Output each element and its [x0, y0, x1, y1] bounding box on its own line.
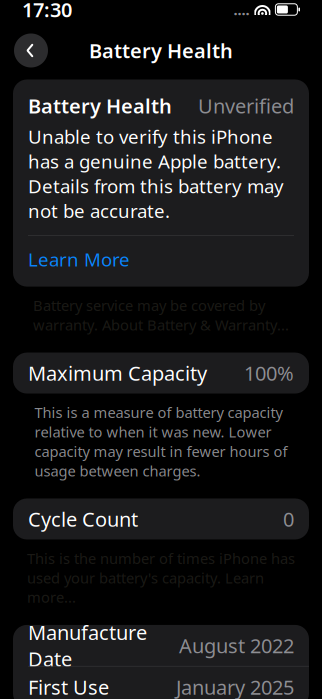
- staticText: Maximum Capacity: [28, 360, 207, 386]
- staticText: First Use: [28, 674, 109, 699]
- staticText: This is a measure of battery capacity re…: [34, 403, 287, 480]
- button[interactable]: Cycle Count: [13, 498, 309, 539]
- button[interactable]: Maximum Capacity: [13, 353, 309, 394]
- staticText: ....: [233, 0, 249, 19]
- staticText: 0: [283, 506, 294, 532]
- staticText: 100%: [244, 360, 294, 386]
- staticText: Unable to verify this iPhone has a genui…: [28, 124, 284, 223]
- staticText: August 2022: [179, 632, 294, 659]
- staticText: Manufacture Date: [28, 619, 147, 672]
- button[interactable]: Learn More: [28, 236, 294, 283]
- staticText: January 2025: [176, 674, 294, 699]
- staticText: Learn More: [28, 247, 130, 272]
- staticText: Unverified: [198, 92, 294, 119]
- staticText: Battery Health: [89, 37, 233, 64]
- staticText: 17:30: [22, 0, 72, 23]
- button[interactable]: Back: [14, 33, 48, 67]
- staticText: This is the number of times iPhone has u…: [27, 548, 295, 607]
- staticText: Battery Health: [28, 92, 172, 119]
- staticText: Battery service may be covered by warran…: [33, 296, 289, 335]
- staticText: Cycle Count: [28, 506, 138, 532]
